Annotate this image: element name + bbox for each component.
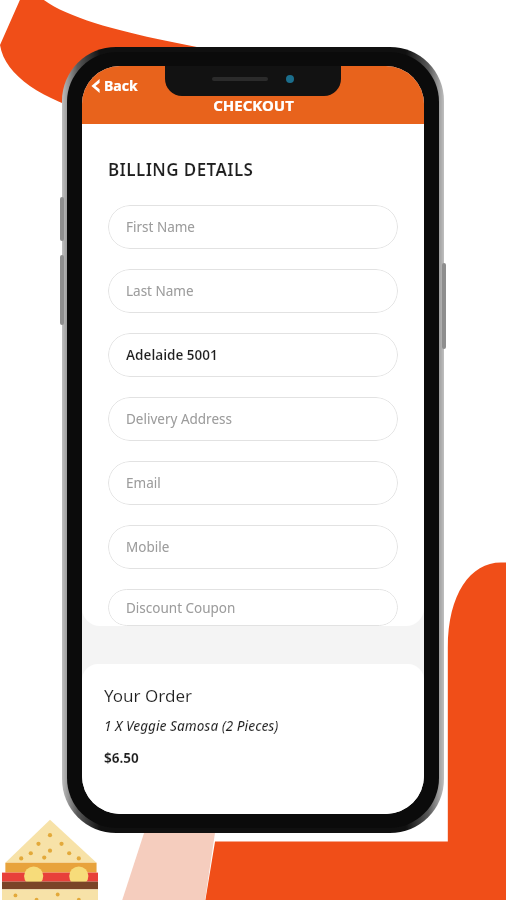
button[interactable]: Last Name [108,269,398,313]
staticText: 1 X Veggie Samosa (2 Pieces) [104,717,279,735]
button[interactable]: Adelaide 5001 [108,333,398,377]
staticText: Adelaide 5001 [126,346,218,364]
staticText: $6.50 [104,749,139,767]
staticText: Discount Coupon [126,599,236,617]
staticText: CHECKOUT [213,95,294,115]
button[interactable]: Your Order [82,664,424,814]
staticText: Your Order [104,684,193,707]
button[interactable]: Back [82,72,150,99]
staticText: Mobile [126,538,170,556]
button[interactable]: Mobile [108,525,398,569]
button[interactable]: First Name [108,205,398,249]
button[interactable]: Delivery Address [108,397,398,441]
staticText: Back [104,76,138,95]
staticText: Last Name [126,282,194,300]
staticText: First Name [126,218,195,236]
staticText: Delivery Address [126,410,232,428]
button[interactable]: Discount Coupon [108,589,398,626]
staticText: Email [126,474,161,492]
button[interactable]: Email [108,461,398,505]
staticText: BILLING DETAILS [108,158,254,181]
